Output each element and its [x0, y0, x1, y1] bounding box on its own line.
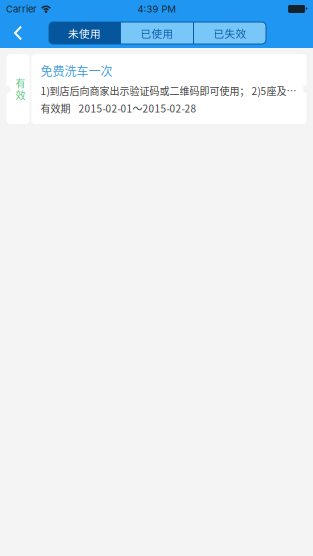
button[interactable]: 已使用 [121, 22, 193, 44]
staticText: 免费洗车一次 [40, 62, 112, 79]
staticText: 有效期 2015-02-01～2015-02-28 [40, 101, 196, 115]
staticText: 效 [15, 88, 25, 102]
staticText: 1)到店后向商家出示验证码或二维码即可使用； 2)5座及… [40, 83, 296, 98]
staticText: 4:39 PM [137, 3, 175, 15]
staticText: 已使用 [140, 25, 173, 41]
staticText: Carrier [6, 3, 37, 15]
staticText: 已失效 [213, 25, 246, 41]
staticText: 有 [15, 76, 25, 90]
button[interactable]: 未使用 [49, 22, 120, 44]
staticText: 未使用 [68, 25, 101, 41]
button[interactable]: 已失效 [194, 22, 266, 44]
button[interactable]: Back [0, 18, 36, 48]
button[interactable]: 有 [6, 54, 306, 124]
